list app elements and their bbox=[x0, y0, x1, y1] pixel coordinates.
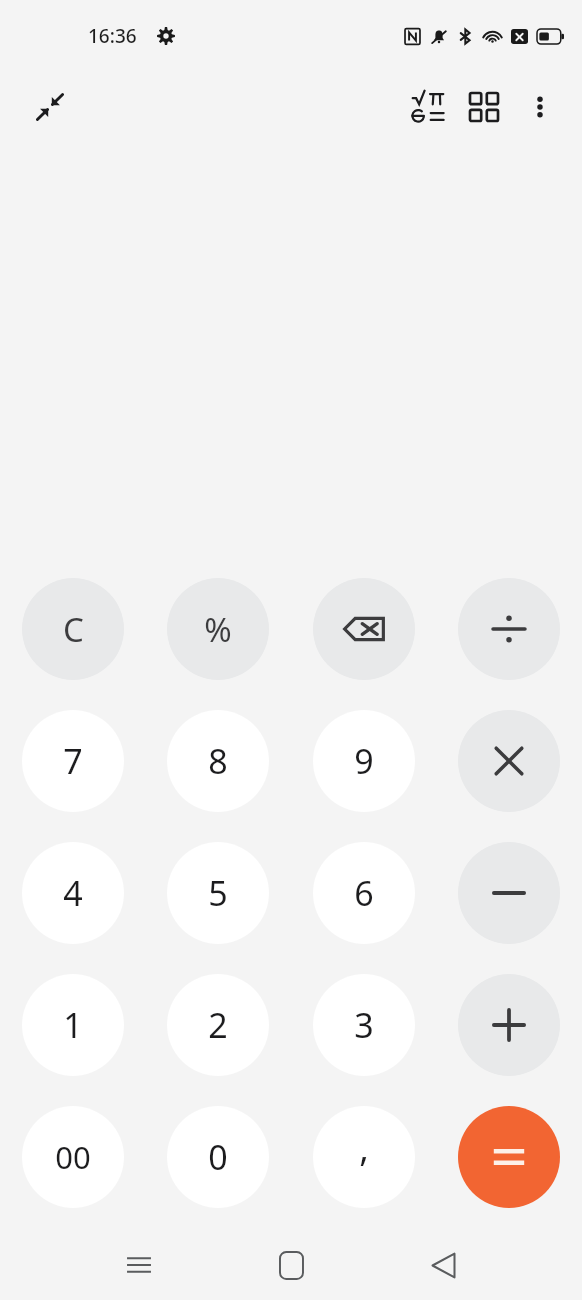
button[interactable]: C bbox=[22, 578, 124, 680]
button[interactable]: 3 bbox=[313, 974, 415, 1076]
button[interactable]: Minus bbox=[458, 842, 560, 944]
button[interactable]: 5 bbox=[167, 842, 269, 944]
staticText: 16:36 bbox=[88, 23, 137, 49]
button[interactable]: 4 bbox=[22, 842, 124, 944]
button[interactable]: Collapse bbox=[22, 79, 78, 135]
staticText: 5 bbox=[208, 870, 228, 916]
button[interactable]: Back bbox=[412, 1234, 474, 1296]
staticText: 00 bbox=[55, 1136, 91, 1178]
button[interactable]: Plus bbox=[458, 974, 560, 1076]
button[interactable]: Keypad layout bbox=[456, 79, 512, 135]
staticText: 8 bbox=[208, 738, 228, 784]
staticText: 9 bbox=[354, 738, 374, 784]
button[interactable]: % bbox=[167, 578, 269, 680]
button[interactable]: Multiply bbox=[458, 710, 560, 812]
button[interactable]: 00 bbox=[22, 1106, 124, 1208]
staticText: 7 bbox=[63, 738, 83, 784]
staticText: 3 bbox=[354, 1002, 374, 1048]
button[interactable]: 6 bbox=[313, 842, 415, 944]
button[interactable]: 9 bbox=[313, 710, 415, 812]
button[interactable]: Divide bbox=[458, 578, 560, 680]
staticText: C bbox=[63, 607, 84, 652]
staticText: 1 bbox=[63, 1002, 83, 1048]
button[interactable]: Recent apps bbox=[108, 1234, 170, 1296]
staticText: 0 bbox=[208, 1134, 228, 1180]
button[interactable]: 1 bbox=[22, 974, 124, 1076]
button[interactable]: , bbox=[313, 1106, 415, 1208]
staticText: 2 bbox=[208, 1002, 228, 1048]
button[interactable]: More options bbox=[512, 79, 568, 135]
staticText: 4 bbox=[63, 870, 83, 916]
button[interactable]: Home bbox=[260, 1234, 322, 1296]
staticText: % bbox=[204, 607, 232, 652]
button[interactable]: Scientific functions bbox=[400, 79, 456, 135]
staticText: , bbox=[359, 1123, 369, 1172]
staticText: 6 bbox=[354, 870, 374, 916]
button[interactable]: 8 bbox=[167, 710, 269, 812]
button[interactable]: 0 bbox=[167, 1106, 269, 1208]
button[interactable]: 7 bbox=[22, 710, 124, 812]
button[interactable]: Backspace bbox=[313, 578, 415, 680]
button[interactable]: Equals bbox=[458, 1106, 560, 1208]
button[interactable]: 2 bbox=[167, 974, 269, 1076]
